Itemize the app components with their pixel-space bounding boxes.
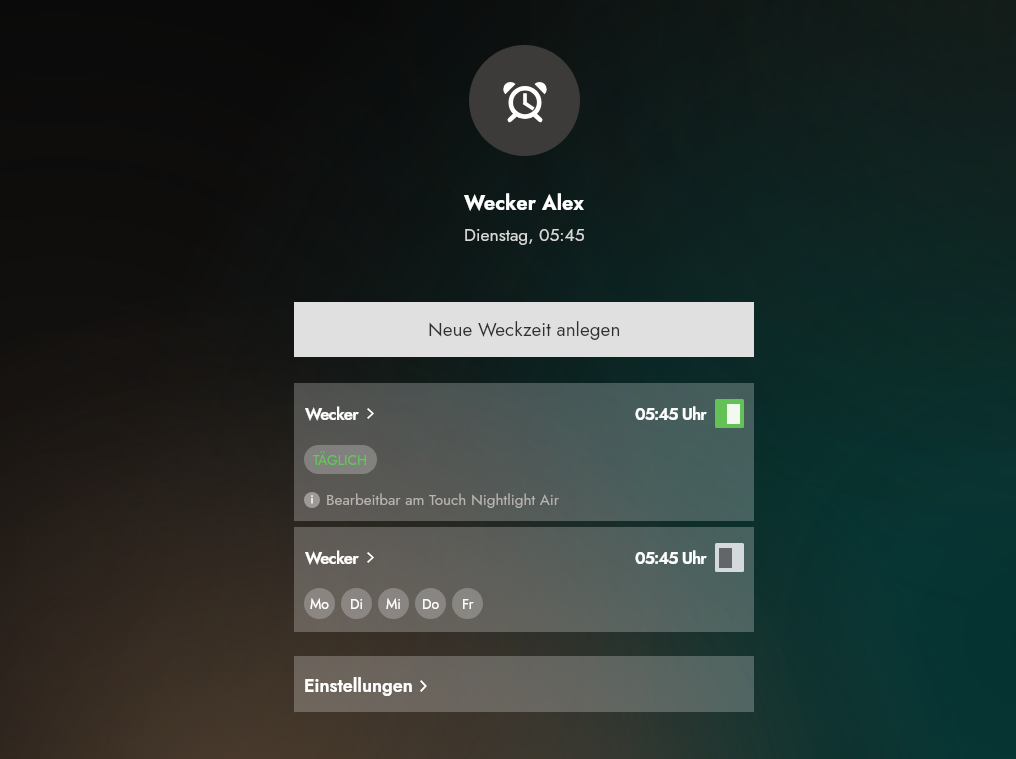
staticText: Di — [350, 594, 364, 614]
staticText: Mo — [310, 594, 329, 614]
button[interactable]: Wecker inaktiv — [715, 543, 744, 572]
staticText: Mi — [386, 594, 401, 614]
staticText: Neue Weckzeit anlegen — [428, 316, 621, 343]
staticText: 05:45 Uhr — [635, 546, 706, 570]
staticText: 05:45 Uhr — [635, 402, 706, 426]
button[interactable]: Do — [415, 588, 446, 619]
button[interactable]: Mo — [304, 588, 335, 619]
staticText: Do — [422, 594, 440, 614]
staticText: Wecker — [305, 402, 359, 426]
staticText: Dienstag, 05:45 — [464, 222, 585, 247]
button[interactable]: Fr — [452, 588, 483, 619]
staticText: Wecker Alex — [464, 189, 584, 218]
button[interactable]: TÄGLICH — [304, 445, 377, 474]
button[interactable]: Einstellungen — [294, 656, 754, 712]
button[interactable]: Wecker — [294, 383, 754, 521]
staticText: TÄGLICH — [313, 450, 368, 470]
staticText: Fr — [462, 594, 474, 614]
button[interactable]: Di — [341, 588, 372, 619]
button[interactable]: Wecker — [294, 527, 754, 632]
button[interactable]: Mi — [378, 588, 409, 619]
button[interactable]: Wecker aktiv — [715, 399, 744, 428]
button[interactable]: Neue Weckzeit anlegen — [294, 302, 754, 357]
staticText: Bearbeitbar am Touch Nightlight Air — [326, 489, 560, 511]
staticText: Einstellungen — [304, 673, 413, 699]
staticText: Wecker — [305, 546, 359, 570]
